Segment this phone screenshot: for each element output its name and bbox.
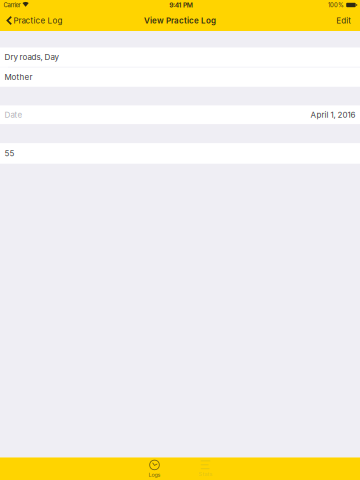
staticText: April 1, 2016 xyxy=(310,110,355,120)
button[interactable]: 55 xyxy=(0,143,360,164)
staticText: Date xyxy=(5,110,23,120)
button[interactable]: Date xyxy=(0,105,360,124)
staticText: Carrier xyxy=(3,1,20,9)
button[interactable]: Practice Log xyxy=(0,10,68,31)
staticText: 9:41 PM xyxy=(169,1,193,9)
button[interactable]: Edit xyxy=(328,10,360,31)
staticText: 100% xyxy=(328,1,344,9)
staticText: Mother xyxy=(5,72,33,82)
staticText: Dry roads, Day xyxy=(5,52,59,62)
staticText: View Practice Log xyxy=(144,16,216,25)
staticText: Stats xyxy=(198,471,212,477)
button[interactable]: Stats xyxy=(180,458,231,480)
button[interactable]: Logs xyxy=(129,458,180,480)
staticText: Logs xyxy=(148,471,160,478)
button[interactable]: Dry roads, Day xyxy=(0,47,360,67)
staticText: Practice Log xyxy=(13,16,62,25)
staticText: 55 xyxy=(5,149,15,158)
button[interactable]: Mother xyxy=(0,67,360,87)
staticText: Edit xyxy=(336,16,351,25)
